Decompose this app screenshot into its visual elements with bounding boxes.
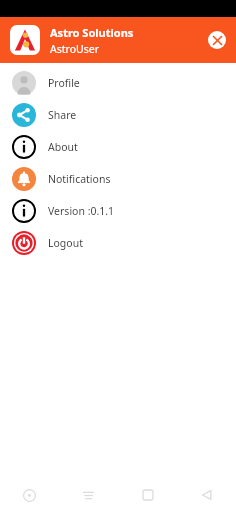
button[interactable]: Close [208,31,226,49]
staticText: Notifications [48,172,111,186]
button[interactable]: Share [0,99,236,131]
staticText: Share [48,108,77,122]
button[interactable]: Menu [59,478,118,512]
button[interactable]: Home [118,478,177,512]
button[interactable]: Back [177,478,236,512]
staticText: Profile [48,76,80,90]
staticText: AstroUser [50,42,99,56]
staticText: Logout [48,236,83,250]
staticText: Version :0.1.1 [48,204,115,218]
staticText: Astro Solutions [50,25,134,40]
button[interactable]: About [0,131,236,163]
button[interactable]: Logout [0,227,236,259]
staticText: About [48,140,78,154]
button[interactable]: Notifications [0,163,236,195]
button[interactable]: Assistant [0,478,59,512]
button[interactable]: Version :0.1.1 [0,195,236,227]
button[interactable]: Profile [0,67,236,99]
